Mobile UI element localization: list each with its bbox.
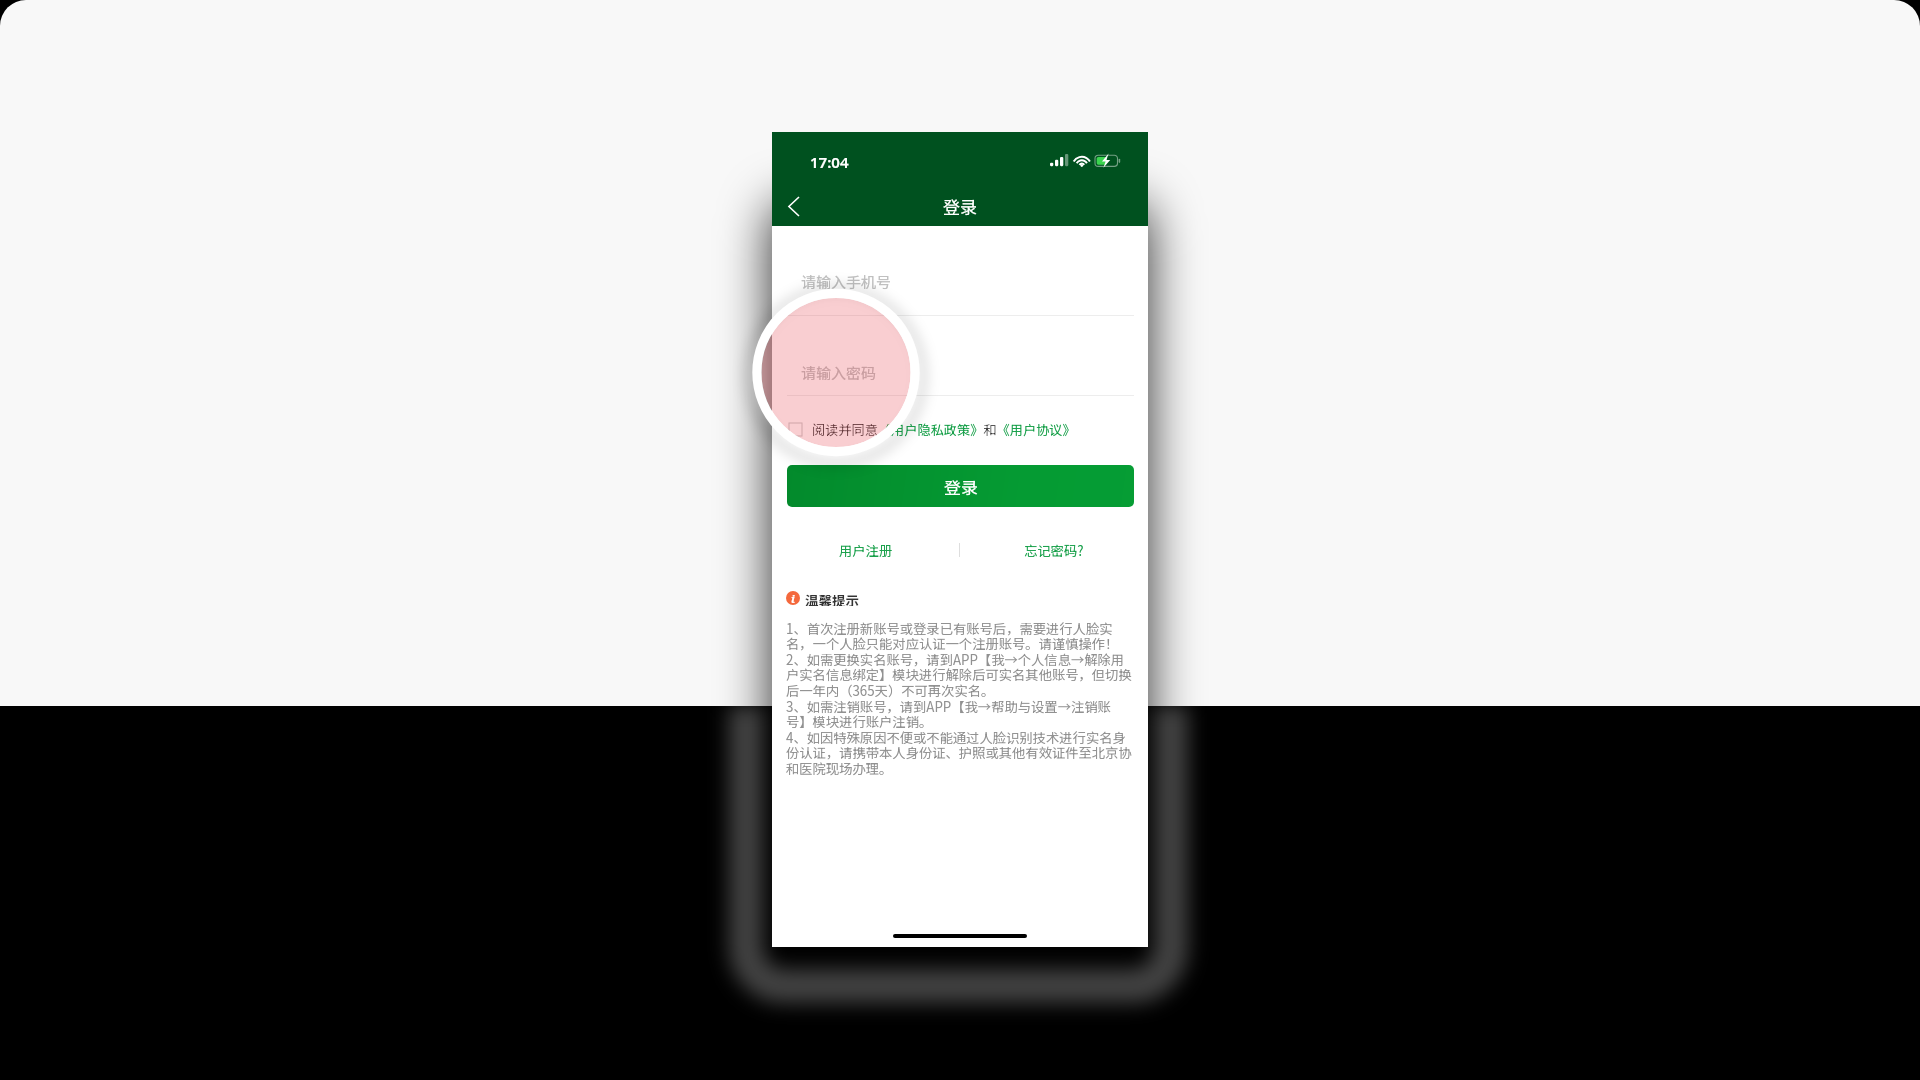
staticText: 登录 [944,474,978,498]
staticText: 名，一个人脸只能对应认证一个注册账号。请谨慎操作！ [786,634,1119,653]
staticText: 登录 [943,194,977,219]
button[interactable]: 用户注册 [772,539,959,561]
staticText: 3、如需注销账号，请到APP【我→帮助与设置→注销账 [786,697,1111,716]
staticText: 份认证，请携带本人身份证、护照或其他有效证件至北京协 [786,743,1132,762]
staticText: 1、首次注册新账号或登录已有账号后，需要进行人脸实 [786,619,1113,638]
staticText: 请输入手机号 [801,271,892,293]
staticText: 温馨提示 [805,590,859,606]
staticText: i [791,591,795,605]
staticText: 户实名信息绑定】模块进行解除后可实名其他账号，但切换 [786,665,1132,684]
staticText: 17:04 [810,152,849,172]
staticText: 后一年内（365天）不可再次实名。 [786,681,995,700]
button[interactable]: 忘记密码? [960,539,1148,561]
staticText: 2、如需更换实名账号，请到APP【我→个人信息→解除用 [786,650,1125,669]
button[interactable]: 登录 [787,465,1134,507]
staticText: 请输入密码 [801,362,877,384]
staticText: 阅读并同意《用户隐私政策》和《用户协议》 [812,420,1076,438]
staticText: 号】模块进行账户注销。 [786,712,933,731]
staticText: 4、如因特殊原因不便或不能通过人脸识别技术进行实名身 [786,728,1126,747]
button[interactable]: 返回 [776,186,816,226]
staticText: 和医院现场办理。 [786,759,893,778]
button[interactable]: 同意用户协议 [789,423,802,436]
staticText: 用户注册 [839,541,893,560]
staticText: 忘记密码? [1024,541,1084,560]
